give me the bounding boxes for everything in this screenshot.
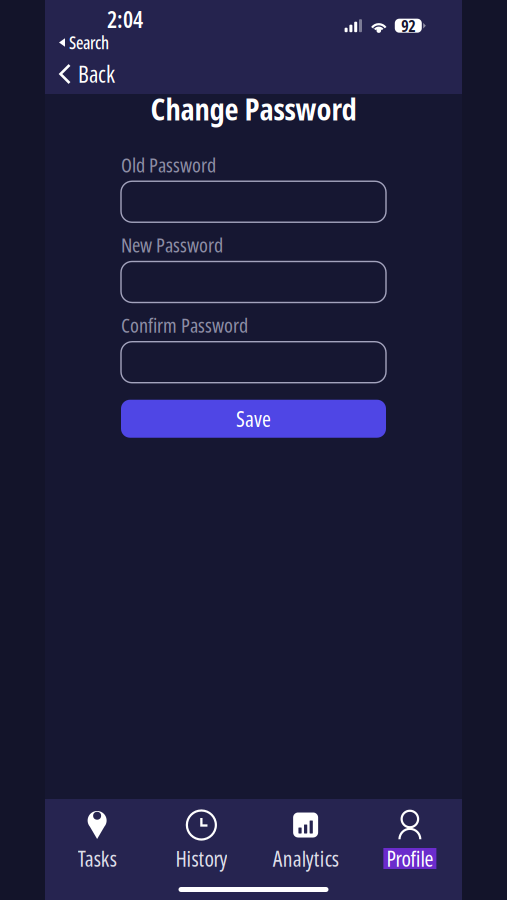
button[interactable]: Tasks [45,799,149,869]
staticText: Save [236,404,271,433]
staticText: Tasks [78,844,117,873]
staticText: History [175,844,227,873]
staticText: Profile [386,844,433,873]
staticText: Old Password [121,151,216,178]
staticText: 2:04 [107,4,143,35]
button[interactable]: Back [45,51,115,93]
staticText: Analytics [273,844,339,873]
button[interactable]: Analytics [253,799,358,869]
staticText: Confirm Password [121,311,248,339]
staticText: Change Password [150,88,356,129]
staticText: New Password [121,231,223,258]
button[interactable]: Profile [358,799,462,869]
button[interactable]: History [149,799,253,869]
button[interactable]: Search [45,0,109,54]
staticText: Search [69,31,109,54]
staticText: 92 [401,15,415,37]
button[interactable]: Save [121,400,386,438]
staticText: Back [78,59,115,89]
